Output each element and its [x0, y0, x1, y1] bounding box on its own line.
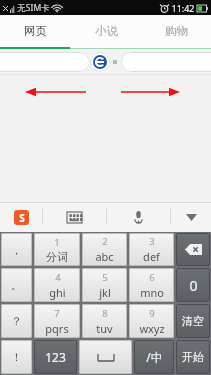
staticText: 开始: [182, 350, 204, 364]
staticText: 3: [149, 235, 155, 248]
button[interactable]: 3: [129, 233, 174, 266]
button[interactable]: 7: [34, 304, 80, 338]
staticText: 网页: [24, 24, 47, 38]
button[interactable]: ，: [1, 233, 32, 266]
staticText: S: [19, 211, 25, 225]
button[interactable]: 9: [129, 304, 174, 338]
button[interactable]: Sogou input: [0, 202, 42, 232]
button[interactable]: 购物: [141, 15, 211, 47]
button[interactable]: /中: [134, 340, 174, 374]
button[interactable]: 6: [129, 268, 174, 302]
button[interactable]: 0: [176, 268, 210, 302]
button[interactable]: [0, 52, 90, 72]
button[interactable]: 网页: [0, 15, 71, 47]
button[interactable]: Hide keyboard: [171, 202, 211, 232]
staticText: tuv: [96, 321, 113, 336]
button[interactable]: 4: [34, 268, 80, 302]
staticText: 4: [55, 271, 61, 284]
staticText: 购物: [165, 24, 188, 38]
button[interactable]: Space: [79, 340, 132, 374]
staticText: 6: [149, 271, 155, 284]
button[interactable]: Voice input: [107, 202, 170, 232]
staticText: def: [143, 249, 160, 264]
staticText: 分词: [46, 250, 68, 264]
staticText: 11:42: [171, 2, 195, 14]
button[interactable]: 清空: [176, 304, 210, 338]
staticText: ？: [11, 314, 22, 328]
staticText: pqrs: [45, 321, 69, 336]
staticText: 0: [189, 276, 198, 295]
staticText: 123: [45, 349, 66, 365]
button[interactable]: ？: [1, 304, 32, 338]
staticText: 1: [54, 236, 60, 249]
staticText: 清空: [182, 314, 204, 328]
staticText: wxyz: [139, 321, 165, 336]
button[interactable]: 开始: [176, 340, 210, 374]
staticText: 9: [149, 307, 155, 320]
staticText: 2: [102, 235, 108, 248]
button[interactable]: Keyboard: [43, 202, 106, 232]
button[interactable]: 2: [82, 233, 127, 266]
button[interactable]: 8: [82, 304, 127, 338]
staticText: /中: [146, 349, 163, 365]
button[interactable]: 1: [34, 233, 80, 266]
staticText: ！: [11, 350, 22, 364]
staticText: 无SIM卡: [17, 2, 50, 14]
staticText: jkl: [99, 285, 111, 300]
staticText: 7: [54, 307, 60, 320]
button[interactable]: 小说: [71, 15, 141, 47]
staticText: 8: [102, 307, 108, 320]
staticText: mno: [140, 285, 164, 300]
button[interactable]: Browser: [90, 52, 110, 72]
button[interactable]: 。: [1, 268, 32, 302]
staticText: 小说: [95, 24, 118, 38]
staticText: abc: [95, 249, 114, 264]
staticText: 5: [102, 271, 108, 284]
button[interactable]: 123: [34, 340, 77, 374]
staticText: ghi: [49, 285, 66, 300]
staticText: 。: [11, 278, 22, 292]
staticText: ，: [11, 243, 22, 257]
button[interactable]: Backspace: [176, 233, 210, 266]
button[interactable]: 5: [82, 268, 127, 302]
button[interactable]: ！: [1, 340, 32, 374]
button[interactable]: [121, 52, 211, 72]
